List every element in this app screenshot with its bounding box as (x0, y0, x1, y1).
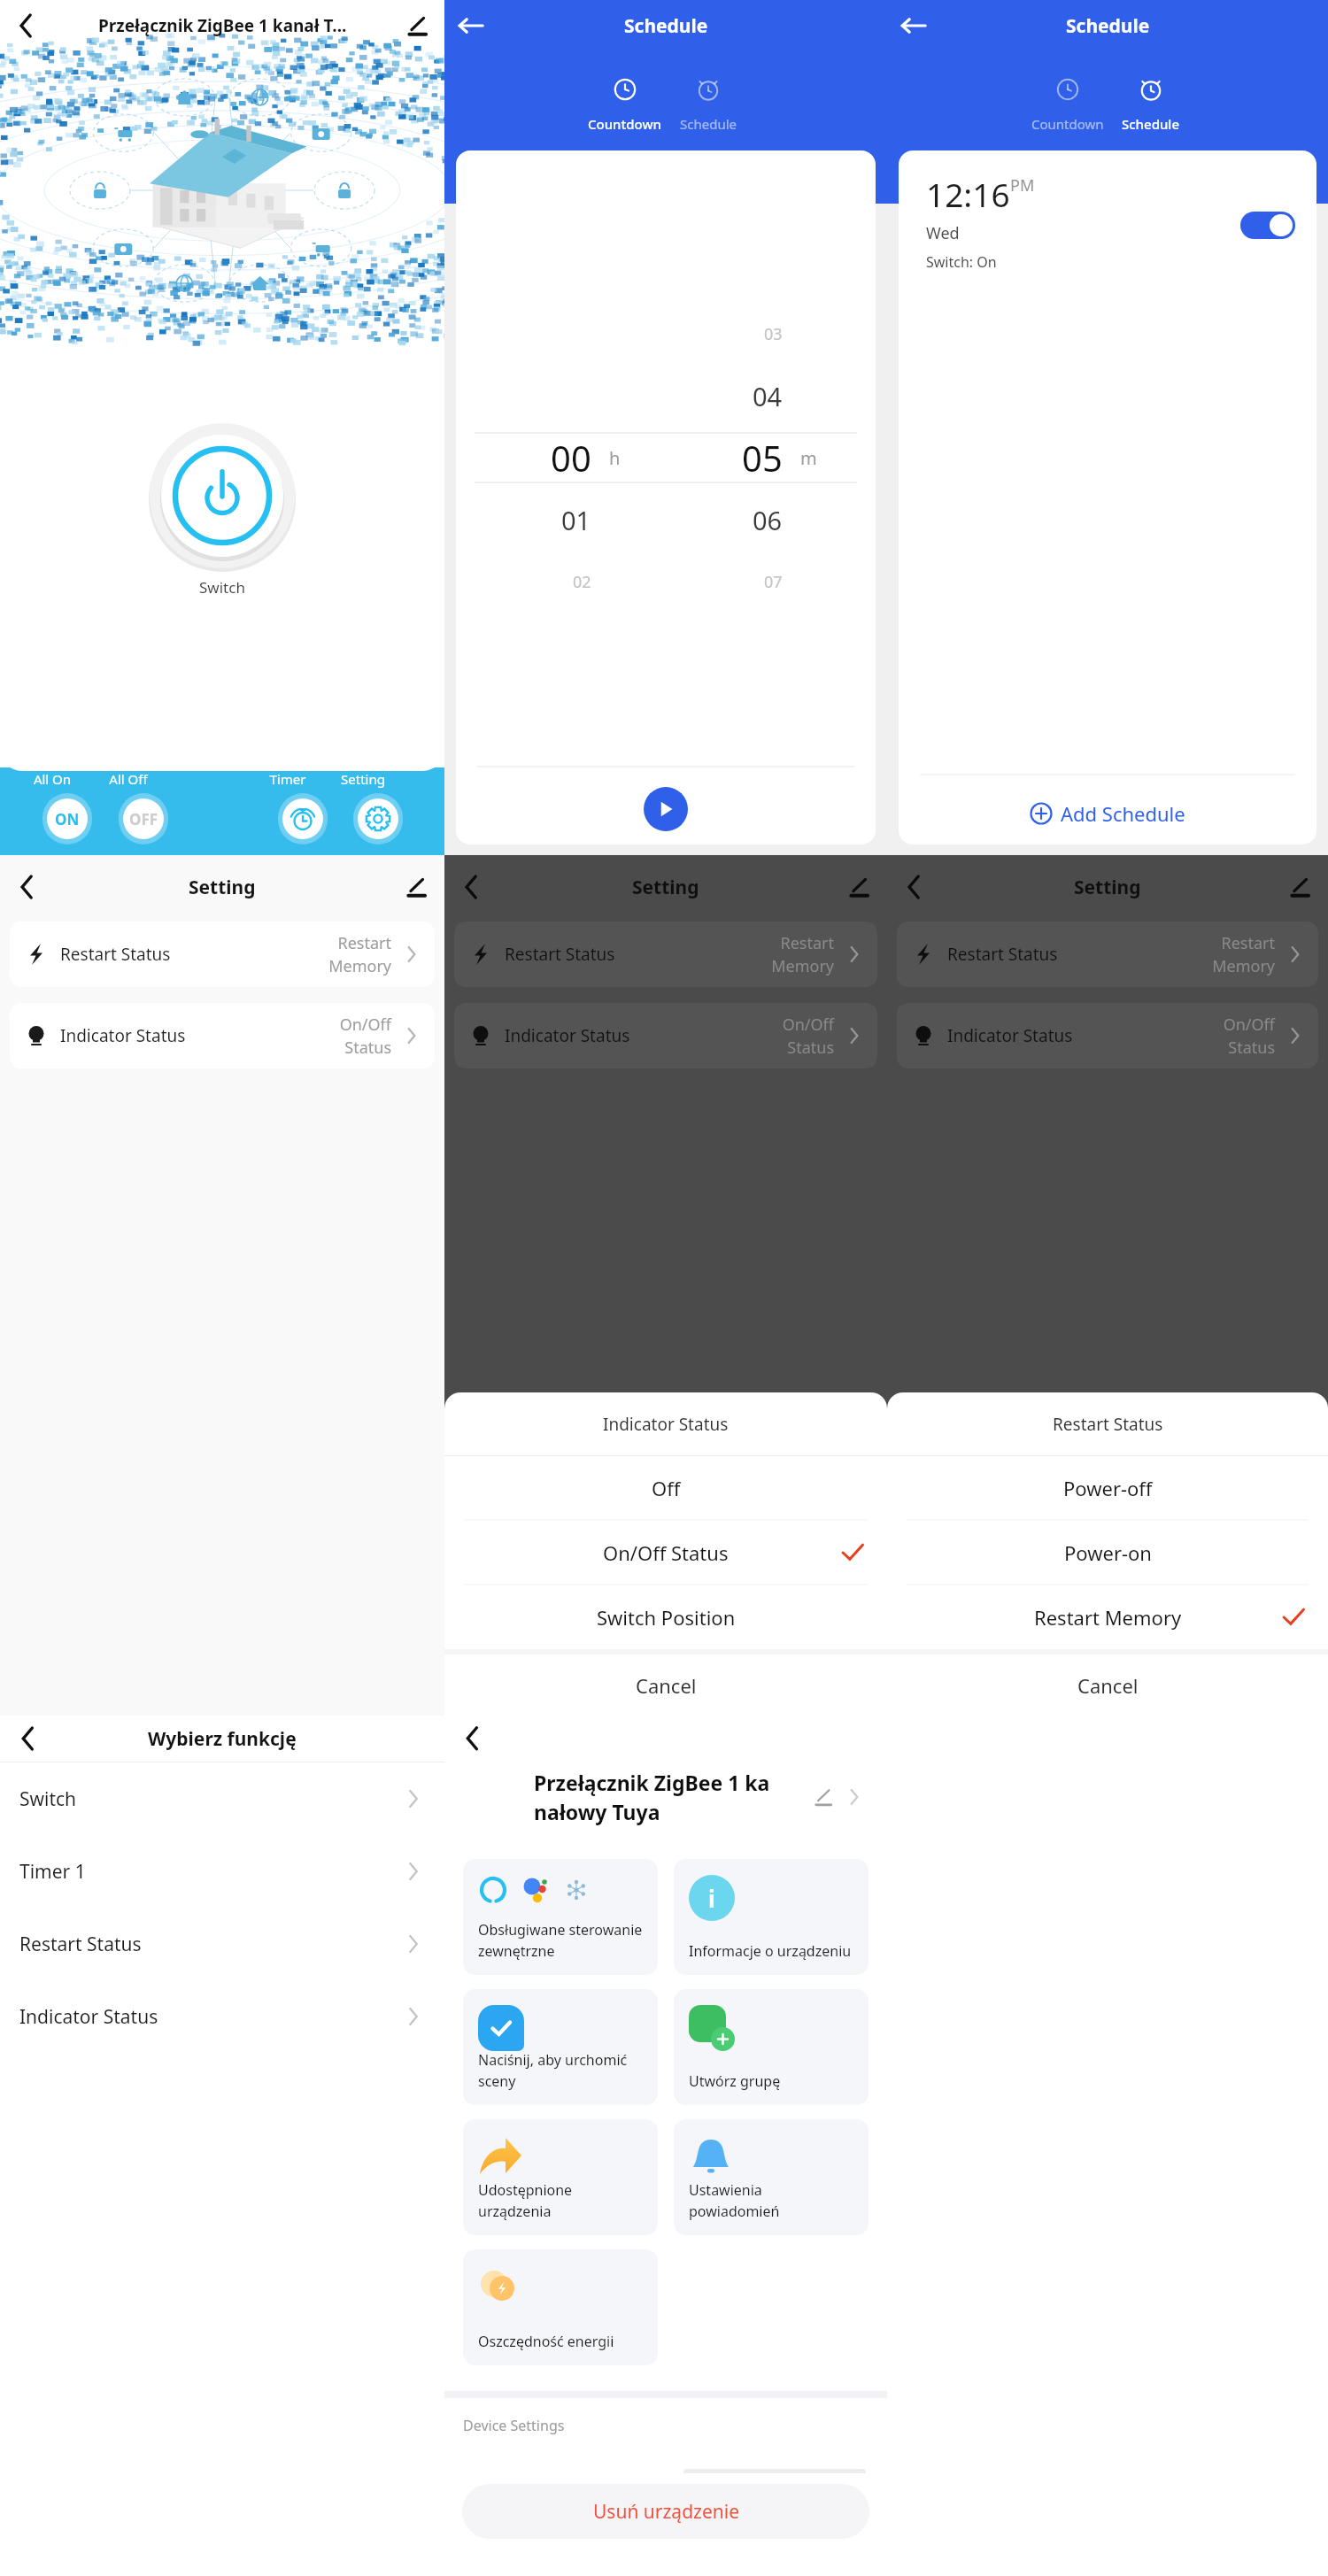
staticText: Switch (19, 1786, 77, 1812)
staticText: 04 (753, 379, 783, 413)
button[interactable]: All On (42, 770, 92, 845)
button[interactable]: Setting (353, 770, 403, 845)
button[interactable]: Restart Status (10, 922, 435, 987)
staticText: Indicator Status (19, 2004, 158, 2030)
staticText: Usuń urządzenie (593, 2499, 739, 2525)
staticText: Schedule (680, 115, 737, 133)
staticText: 06 (753, 503, 783, 537)
staticText: All On (27, 770, 77, 788)
button[interactable]: Power-off (887, 1456, 1328, 1520)
staticText: Przełącznik ZigBee 1 kanał T... (98, 14, 347, 37)
button[interactable]: Cancel (887, 1654, 1328, 1716)
button[interactable]: Schedule (1108, 75, 1193, 133)
button[interactable]: Restart Status (454, 922, 877, 987)
button[interactable]: Restart Memory (887, 1585, 1328, 1649)
button[interactable]: Back (887, 0, 938, 51)
staticText: 12:16 (926, 172, 1010, 216)
button[interactable]: Toggle switch power (146, 420, 298, 572)
button[interactable]: Cancel (444, 1654, 887, 1716)
button[interactable]: Utwórz grupę (674, 1989, 869, 2105)
button[interactable]: Indicator Status (897, 1003, 1318, 1068)
button[interactable]: Ustawienia powiadomień (674, 2119, 869, 2235)
staticText: Naciśnij, aby urchomić sceny (478, 2050, 628, 2091)
button[interactable]: Restart Status (0, 1908, 444, 1980)
staticText: Indicator Status (505, 1024, 630, 1047)
staticText: Indicator Status (60, 1024, 186, 1047)
staticText: Przełącznik ZigBee 1 ka nałowy Tuya (534, 1769, 770, 1826)
button[interactable]: Oszczędność energii (463, 2249, 658, 2365)
staticText: Cancel (636, 1672, 697, 1699)
button[interactable]: Indicator Status (0, 1980, 444, 2053)
staticText: On/Off Status (339, 1014, 391, 1058)
staticText: Restart Memory (771, 932, 834, 976)
staticText: Restart Memory (1034, 1604, 1182, 1631)
button[interactable]: 12:16 (899, 150, 1316, 301)
button[interactable]: Back (0, 855, 51, 919)
staticText: Setting (338, 770, 388, 788)
button[interactable]: Udostępnione urządzenia (463, 2119, 658, 2235)
staticText: Wybierz funkcję (148, 1726, 297, 1752)
staticText: Restart Status (60, 943, 171, 966)
button[interactable]: Timer 1 (0, 1835, 444, 1908)
button[interactable]: Usuń urządzenie (462, 2484, 869, 2539)
staticText: 05 (742, 434, 783, 482)
button[interactable]: Back (887, 855, 938, 919)
button[interactable]: Edit (836, 855, 887, 919)
button[interactable]: Countdown (1025, 75, 1109, 133)
button[interactable]: Switch (0, 1762, 444, 1835)
button[interactable]: Edit name (807, 1780, 841, 1814)
button[interactable]: On/Off Status (444, 1521, 887, 1585)
staticText: Oszczędność energii (478, 2332, 614, 2351)
button[interactable]: Switch Position (444, 1585, 887, 1649)
staticText: Obsługiwane sterowanie zewnętrzne (478, 1920, 643, 1961)
button[interactable]: i (674, 1859, 869, 1975)
button[interactable]: Countdown (583, 75, 667, 133)
button[interactable]: Restart Status (897, 922, 1318, 987)
button[interactable]: Back (0, 0, 50, 51)
staticText: i (708, 1883, 715, 1914)
staticText: Switch (199, 577, 245, 598)
staticText: Utwórz grupę (689, 2071, 781, 2091)
button[interactable]: Edit (395, 0, 444, 51)
button[interactable]: Timer (278, 770, 328, 845)
staticText: Setting (1074, 875, 1141, 900)
staticText: Off (652, 1475, 681, 1501)
staticText: Cancel (1077, 1672, 1139, 1699)
button[interactable]: Edit (1277, 855, 1328, 919)
staticText: Setting (189, 875, 256, 900)
staticText: Timer (263, 770, 313, 788)
button[interactable]: Power-on (887, 1521, 1328, 1585)
staticText: On/Off Status (1223, 1014, 1275, 1058)
staticText: On/Off Status (782, 1014, 834, 1058)
button[interactable]: Back (444, 855, 496, 919)
staticText: All Off (104, 770, 153, 788)
staticText: Switch Position (597, 1604, 736, 1631)
button[interactable]: Back (0, 1716, 51, 1762)
staticText: Switch: On (926, 252, 997, 272)
staticText: Restart Status (19, 1932, 142, 1957)
staticText: h (609, 446, 621, 470)
staticText: Schedule (1066, 13, 1150, 39)
button[interactable]: Back (444, 0, 496, 51)
button[interactable]: Indicator Status (10, 1003, 435, 1068)
staticText: Udostępnione urządzenia (478, 2180, 573, 2221)
staticText: m (800, 446, 817, 470)
button[interactable]: Start countdown (644, 787, 688, 831)
staticText: Power-on (1064, 1539, 1152, 1566)
button[interactable]: Off (444, 1456, 887, 1520)
button[interactable]: Indicator Status (454, 1003, 877, 1068)
staticText: 07 (764, 571, 783, 593)
button[interactable]: Obsługiwane sterowanie zewnętrzne (463, 1859, 658, 1975)
button[interactable]: Naciśnij, aby urchomić sceny (463, 1989, 658, 2105)
staticText: On/Off Status (603, 1539, 729, 1566)
staticText: Setting (632, 875, 699, 900)
button[interactable]: All Off (119, 770, 168, 845)
button[interactable]: Schedule (666, 75, 750, 133)
button[interactable]: Add Schedule (899, 775, 1316, 845)
staticText: ON (55, 809, 80, 829)
button[interactable]: Schedule enabled (1240, 212, 1295, 239)
button[interactable]: Edit (393, 855, 444, 919)
staticText: OFF (129, 809, 158, 829)
staticText: Power-off (1063, 1475, 1153, 1501)
button[interactable]: Back (444, 1716, 494, 1756)
